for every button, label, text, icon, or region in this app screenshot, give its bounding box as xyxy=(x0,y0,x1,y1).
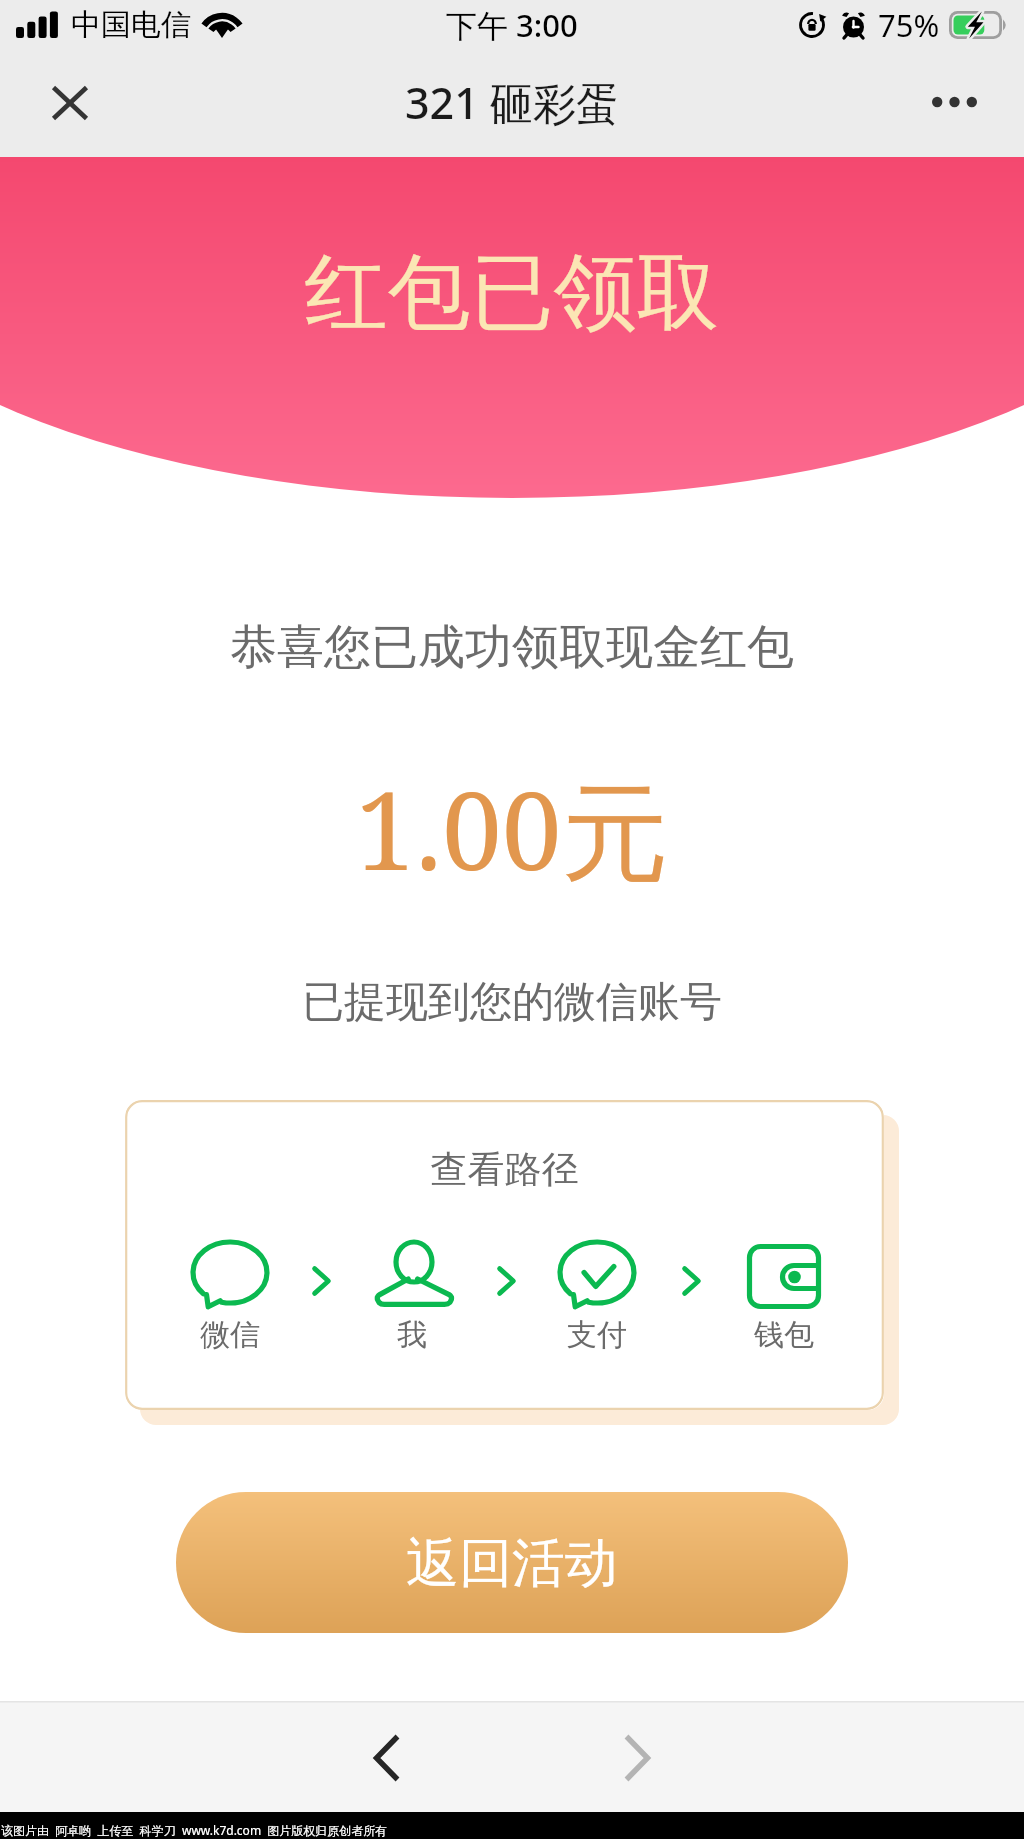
staticText: 返回活动 xyxy=(406,1530,618,1597)
staticText: 恭喜您已成功领取现金红包 xyxy=(0,618,1024,677)
staticText: 该图片由 阿卓哟 上传至 科学刀 www.k7d.com 图片版权归原创者所有 xyxy=(1,1822,388,1838)
staticText: 下午 3:00 xyxy=(446,4,578,46)
staticText: 微信 xyxy=(168,1316,292,1354)
staticText: 查看路径 xyxy=(125,1146,884,1193)
button[interactable]: Close xyxy=(0,56,120,157)
button[interactable]: 微信 xyxy=(168,1232,292,1356)
staticText: 支付 xyxy=(535,1316,659,1354)
button[interactable]: 支付 xyxy=(535,1232,659,1356)
button[interactable]: Back xyxy=(332,1704,442,1812)
button[interactable]: Forward xyxy=(582,1704,692,1812)
button[interactable]: More options xyxy=(904,56,1024,157)
staticText: 75% xyxy=(878,4,940,46)
staticText: 钱包 xyxy=(722,1316,846,1354)
staticText: 红包已领取 xyxy=(0,241,1024,346)
staticText: 1.00元 xyxy=(0,756,1024,902)
button[interactable] xyxy=(125,1100,884,1410)
staticText: 已提现到您的微信账号 xyxy=(0,976,1024,1029)
button[interactable]: 钱包 xyxy=(722,1232,846,1356)
button[interactable]: 返回活动 xyxy=(176,1492,848,1633)
staticText: 我 xyxy=(350,1316,474,1354)
button[interactable]: 我 xyxy=(350,1232,474,1356)
staticText: 321 砸彩蛋 xyxy=(405,73,619,132)
staticText: 中国电信 xyxy=(71,6,191,44)
